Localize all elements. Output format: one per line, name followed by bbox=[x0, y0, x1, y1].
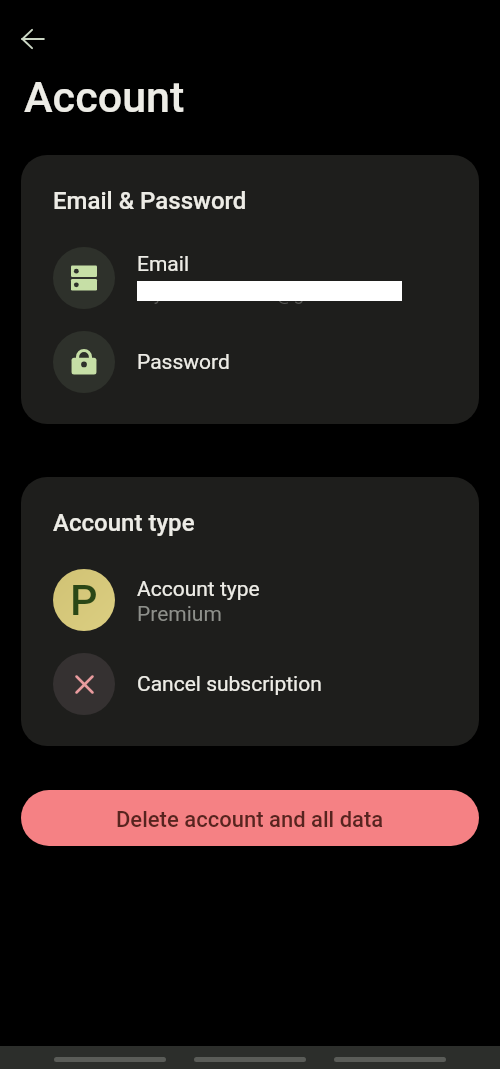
button[interactable]: Navigation item bbox=[334, 1057, 446, 1062]
staticText: myemailaddress@gmail.com bbox=[137, 282, 383, 304]
staticText: P bbox=[70, 575, 98, 625]
staticText: Password bbox=[137, 350, 230, 375]
button[interactable]: Email bbox=[21, 247, 479, 309]
button[interactable]: Navigation item bbox=[54, 1057, 166, 1062]
staticText: Delete account and all data bbox=[116, 807, 384, 833]
button[interactable]: Navigation item bbox=[194, 1057, 306, 1062]
staticText: Account bbox=[24, 72, 185, 122]
staticText: Email bbox=[137, 252, 189, 277]
button[interactable]: Delete account and all data bbox=[21, 790, 479, 846]
staticText: Premium bbox=[137, 602, 222, 627]
button[interactable]: Password bbox=[21, 331, 479, 393]
staticText: Email & Password bbox=[53, 187, 247, 215]
staticText: Account type bbox=[53, 509, 195, 537]
button[interactable]: Back bbox=[10, 16, 56, 62]
button[interactable]: P bbox=[21, 569, 479, 631]
staticText: Cancel subscription bbox=[137, 672, 322, 697]
staticText: Account type bbox=[137, 577, 260, 602]
button[interactable]: Cancel subscription bbox=[21, 653, 479, 715]
